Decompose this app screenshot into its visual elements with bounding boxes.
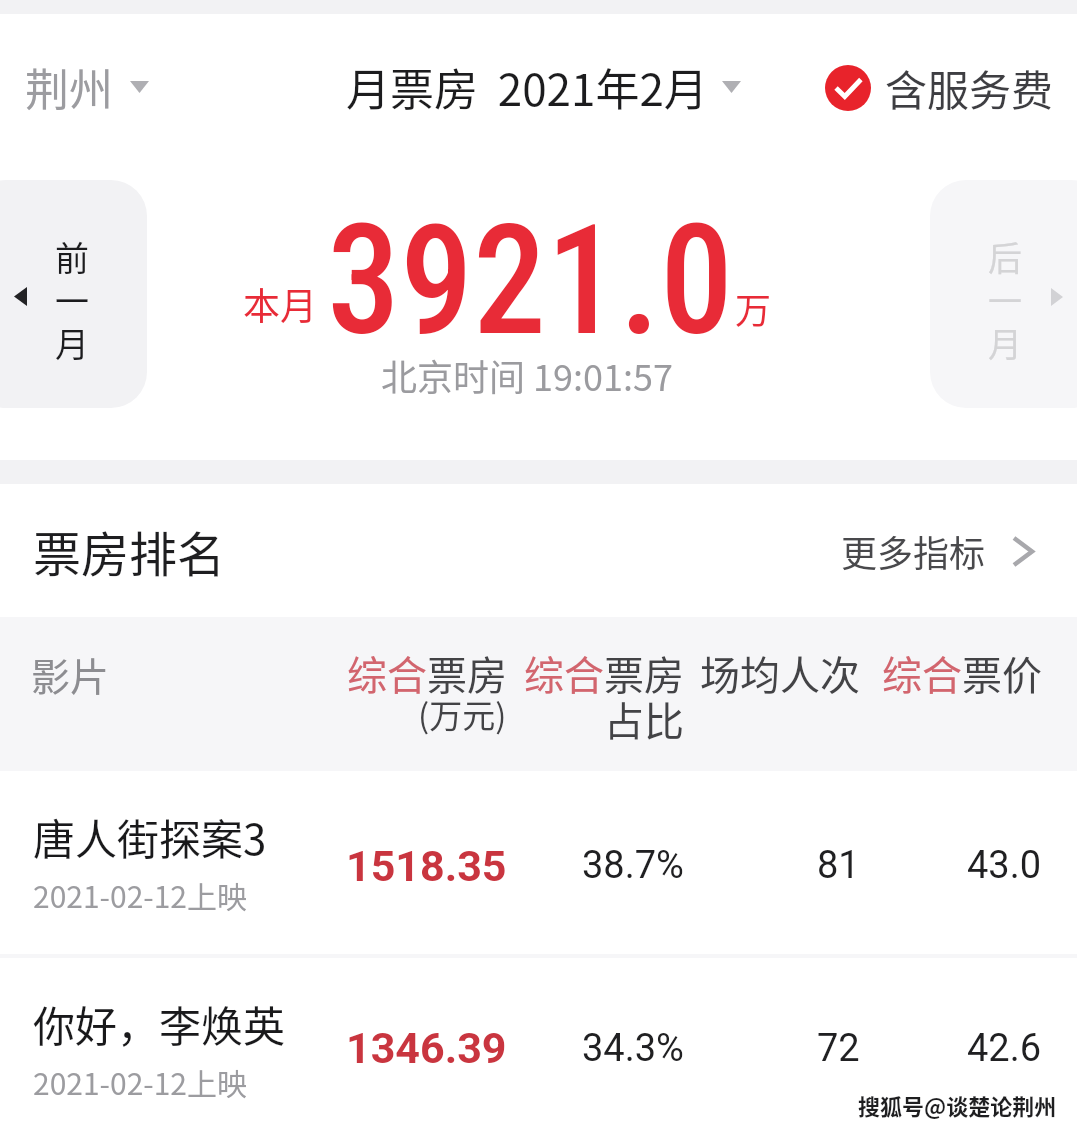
staticText: 34.3%: [582, 1026, 684, 1071]
staticText: 占比: [604, 690, 684, 748]
staticText: 2021-02-12上映: [33, 1060, 248, 1103]
button[interactable]: 更多指标: [835, 513, 1040, 589]
staticText: 后 一 月: [988, 232, 1022, 367]
staticText: 42.6: [967, 1026, 1042, 1071]
staticText: 72: [817, 1026, 860, 1071]
staticText: 你好，李焕英: [33, 993, 286, 1054]
button[interactable]: 荆州: [12, 43, 159, 131]
staticText: 综合票价: [882, 644, 1042, 702]
button[interactable]: 唐人街探案3: [0, 771, 1077, 954]
button[interactable]: 你好，李焕英: [0, 958, 1077, 1132]
staticText: 万: [735, 282, 772, 334]
staticText: 票房排名: [33, 516, 226, 586]
staticText: 影片: [31, 646, 110, 702]
button[interactable]: 前一月: [0, 180, 147, 408]
button[interactable]: 含服务费: [818, 45, 1061, 130]
staticText: 3921.0: [327, 191, 734, 370]
staticText: 月票房 2021年2月: [346, 55, 708, 119]
staticText: 综合票房: [347, 644, 507, 702]
staticText: 本月: [243, 277, 317, 331]
staticText: 北京时间 19:01:57: [381, 349, 673, 401]
staticText: 综合票房: [524, 644, 684, 702]
staticText: 含服务费: [885, 57, 1054, 118]
staticText: 1518.35: [346, 841, 507, 891]
staticText: 荆州: [25, 55, 113, 119]
staticText: 更多指标: [841, 525, 986, 577]
button[interactable]: 后一月: [930, 180, 1077, 408]
staticText: 81: [817, 843, 860, 888]
staticText: 1346.39: [346, 1023, 507, 1073]
staticText: 38.7%: [582, 843, 684, 888]
staticText: 前 一 月: [55, 232, 89, 367]
button[interactable]: 月票房 2021年2月: [346, 43, 741, 131]
staticText: 场均人次: [700, 644, 860, 702]
staticText: (万元): [418, 690, 507, 738]
staticText: 43.0: [967, 843, 1042, 888]
staticText: 唐人街探案3: [33, 806, 267, 867]
staticText: 搜狐号@谈楚论荆州: [858, 1089, 1057, 1121]
staticText: 2021-02-12上映: [33, 873, 248, 916]
